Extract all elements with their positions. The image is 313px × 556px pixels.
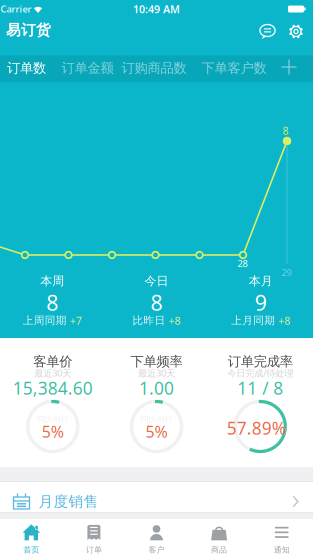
staticText: 今日 <box>144 274 168 288</box>
staticText: 下单频率 <box>130 353 182 370</box>
staticText: 客户 <box>148 545 164 555</box>
staticText: 商品 <box>211 545 227 555</box>
button[interactable]: 订单金额 <box>56 55 118 81</box>
staticText: 最近30天 <box>138 367 175 379</box>
staticText: 订单完成率 <box>228 353 293 370</box>
staticText: 11 / 8 <box>237 376 283 399</box>
staticText: +7 <box>70 313 82 328</box>
button[interactable]: 消息 <box>254 19 280 43</box>
button[interactable]: 首页 <box>1 523 61 556</box>
staticText: 易订货 <box>6 21 51 39</box>
staticText: 29 <box>281 266 291 279</box>
staticText: 同比同行 <box>140 415 172 424</box>
staticText: 8 <box>46 288 58 317</box>
button[interactable]: 订购商品数 <box>117 55 191 81</box>
staticText: 28 <box>237 257 247 270</box>
staticText: 同比同行 <box>37 415 69 424</box>
button[interactable]: 月度销售 <box>0 486 313 516</box>
staticText: 15,384.60 <box>13 376 93 399</box>
staticText: 比昨日 <box>132 314 165 327</box>
staticText: 9 <box>255 288 267 317</box>
button[interactable]: 客户 <box>126 523 186 556</box>
button[interactable]: 设置 <box>283 19 309 43</box>
staticText: 最近30天 <box>34 367 71 379</box>
staticText: 57.89% <box>227 416 286 439</box>
button[interactable]: 添加指标 <box>273 51 304 82</box>
staticText: 月度销售 <box>38 492 98 510</box>
staticText: 8 <box>282 123 288 138</box>
button[interactable]: 订单数 <box>2 55 50 81</box>
button[interactable]: 商品 <box>189 523 249 556</box>
staticText: 10:49 AM <box>133 2 180 16</box>
staticText: 客单价 <box>33 353 72 370</box>
staticText: 1.00 <box>139 376 174 399</box>
staticText: 订购商品数 <box>121 60 186 76</box>
button[interactable]: 订单 <box>64 523 124 556</box>
staticText: Carrier <box>0 3 31 15</box>
staticText: 首页 <box>23 545 39 555</box>
button[interactable]: 下单客户数 <box>197 55 271 81</box>
staticText: 今日完成/待处理 <box>227 367 293 379</box>
staticText: 下单客户数 <box>201 60 266 76</box>
staticText: 订单 <box>86 545 102 555</box>
button[interactable]: 通知 <box>252 523 312 556</box>
staticText: 本月 <box>249 274 273 288</box>
staticText: 上周同期 <box>23 314 67 327</box>
staticText: 8 <box>150 288 162 317</box>
staticText: 订单金额 <box>61 60 113 76</box>
staticText: 通知 <box>274 545 290 555</box>
staticText: 上月同期 <box>231 314 275 327</box>
staticText: +8 <box>278 313 290 328</box>
staticText: +8 <box>168 313 180 328</box>
staticText: 5% <box>145 421 167 442</box>
staticText: 5% <box>42 421 64 442</box>
staticText: 本周 <box>40 274 64 288</box>
staticText: 订单数 <box>7 60 46 76</box>
